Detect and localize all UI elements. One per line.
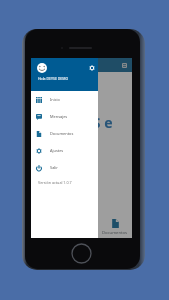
button[interactable]: Ajustes [31, 142, 98, 159]
button[interactable]: Notifications [120, 61, 128, 69]
staticText: Hola DEYSE DEMO [38, 76, 69, 81]
button[interactable]: Documentos [102, 219, 128, 236]
button[interactable]: Settings [87, 63, 97, 73]
button[interactable]: Salir [31, 159, 98, 176]
button[interactable]: Documentos [31, 125, 98, 142]
staticText: Inicio [50, 97, 60, 102]
staticText: Versión actual 1.0.7 [38, 180, 72, 185]
staticText: Ajustes [50, 148, 64, 153]
staticText: Salir [50, 165, 58, 170]
staticText: ES e [85, 113, 113, 132]
button[interactable]: Mensajes [31, 108, 98, 125]
staticText: Documentos [102, 230, 128, 236]
staticText: Mensajes [50, 114, 68, 119]
button[interactable]: Inicio [31, 91, 98, 108]
staticText: Documentos [50, 131, 74, 136]
